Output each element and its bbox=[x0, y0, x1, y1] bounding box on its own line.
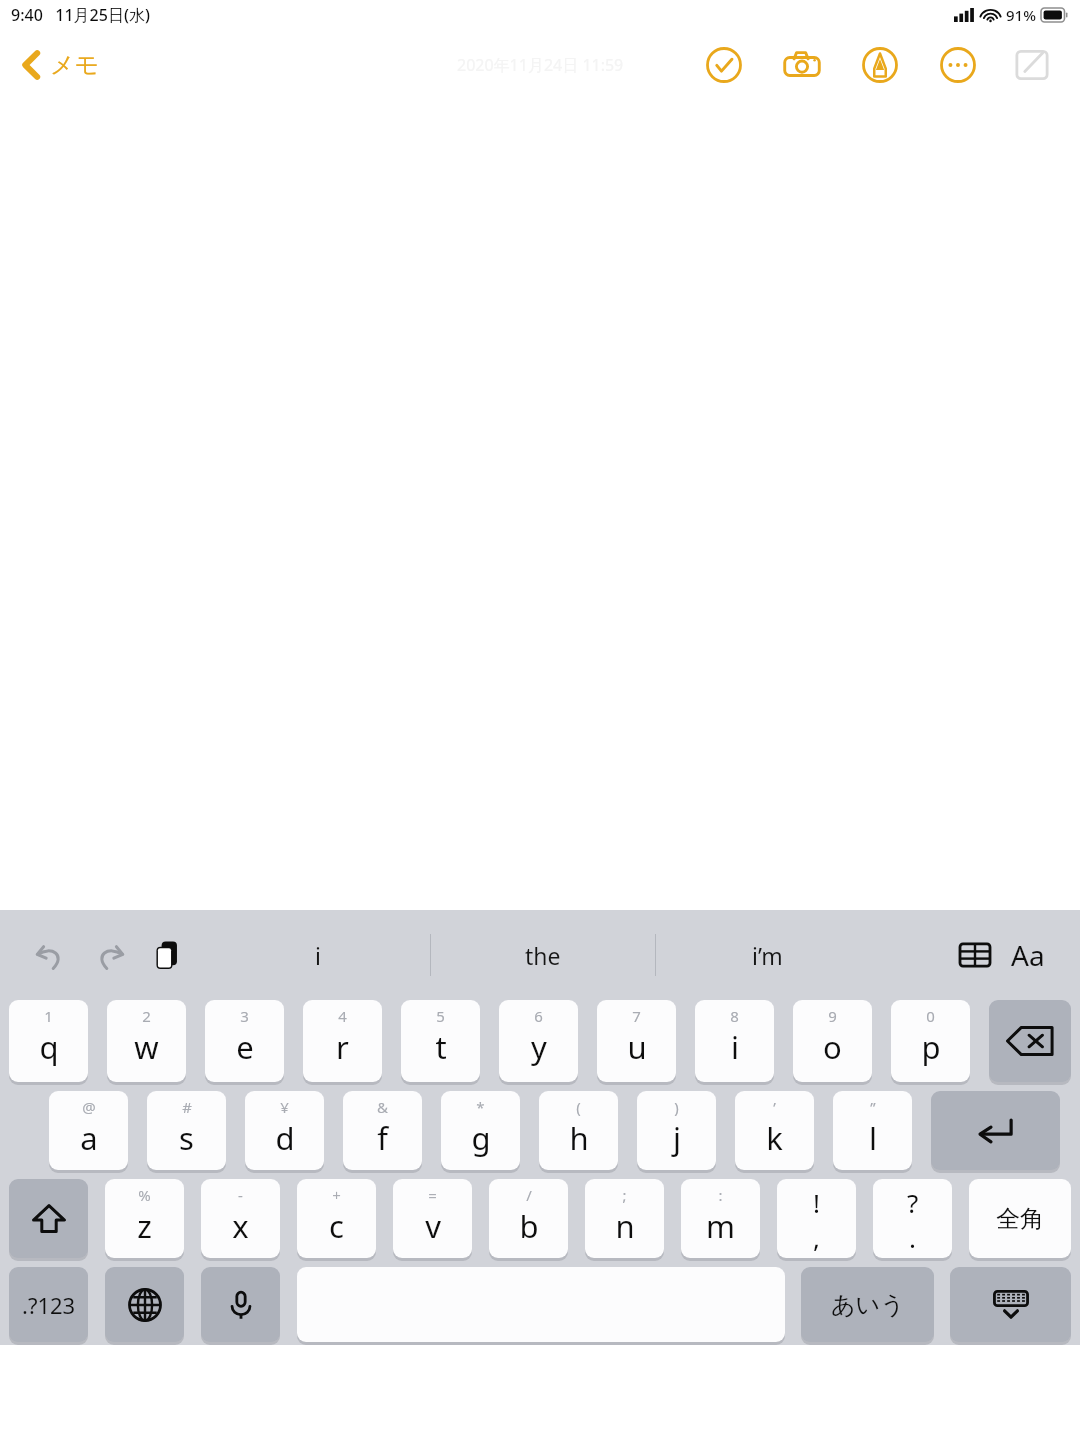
staticText: 8 bbox=[730, 1006, 739, 1026]
button[interactable]: Camera bbox=[780, 43, 824, 87]
button[interactable]: = bbox=[393, 1179, 472, 1261]
staticText: t bbox=[435, 1026, 447, 1068]
staticText: p bbox=[921, 1026, 941, 1068]
button[interactable]: ¥ bbox=[245, 1091, 324, 1173]
button[interactable]: 6 bbox=[499, 1000, 578, 1085]
staticText: + bbox=[332, 1185, 341, 1205]
staticText: 7 bbox=[632, 1006, 641, 1026]
button[interactable]: Space bbox=[297, 1267, 785, 1345]
button[interactable]: % bbox=[105, 1179, 184, 1261]
staticText: g bbox=[471, 1117, 491, 1159]
button[interactable]: ” bbox=[833, 1091, 912, 1173]
button[interactable]: ? bbox=[873, 1179, 952, 1261]
button[interactable]: Markup bbox=[858, 43, 902, 87]
staticText: c bbox=[329, 1205, 344, 1247]
staticText: / bbox=[526, 1185, 532, 1205]
button[interactable]: Table bbox=[952, 932, 998, 978]
staticText: d bbox=[275, 1117, 295, 1159]
button[interactable]: 9 bbox=[793, 1000, 872, 1085]
button[interactable]: ; bbox=[585, 1179, 664, 1261]
button[interactable]: Aa bbox=[1006, 931, 1050, 979]
button[interactable]: - bbox=[201, 1179, 280, 1261]
button[interactable]: Checklist bbox=[702, 43, 746, 87]
button[interactable]: + bbox=[297, 1179, 376, 1261]
staticText: ; bbox=[622, 1185, 627, 1205]
staticText: n bbox=[615, 1205, 635, 1247]
staticText: 0 bbox=[926, 1006, 935, 1026]
button[interactable]: ’ bbox=[735, 1091, 814, 1173]
staticText: r bbox=[336, 1026, 349, 1068]
button[interactable]: Return bbox=[931, 1091, 1060, 1173]
button[interactable]: あいう bbox=[801, 1267, 934, 1345]
button[interactable]: 全角 bbox=[969, 1179, 1071, 1261]
button[interactable]: 2 bbox=[107, 1000, 186, 1085]
button[interactable]: : bbox=[681, 1179, 760, 1261]
button[interactable]: 8 bbox=[695, 1000, 774, 1085]
staticText: 9:40 11月25日(水) bbox=[11, 4, 150, 26]
staticText: h bbox=[569, 1117, 589, 1159]
staticText: w bbox=[134, 1026, 159, 1068]
button[interactable]: メモ bbox=[16, 41, 106, 89]
staticText: @ bbox=[82, 1097, 96, 1117]
staticText: s bbox=[179, 1117, 194, 1159]
button[interactable]: Paste bbox=[144, 931, 192, 979]
button[interactable]: 4 bbox=[303, 1000, 382, 1085]
staticText: k bbox=[766, 1117, 783, 1159]
staticText: i bbox=[731, 1026, 739, 1068]
staticText: i bbox=[315, 940, 321, 971]
button[interactable]: Dictate bbox=[201, 1267, 280, 1345]
button[interactable]: @ bbox=[49, 1091, 128, 1173]
staticText: i’m bbox=[752, 940, 783, 971]
staticText: o bbox=[823, 1026, 842, 1068]
button[interactable]: More bbox=[936, 43, 980, 87]
staticText: 6 bbox=[534, 1006, 543, 1026]
staticText: 1 bbox=[44, 1006, 53, 1026]
button[interactable]: Next keyboard bbox=[105, 1267, 184, 1345]
staticText: m bbox=[706, 1205, 735, 1247]
button[interactable]: 1 bbox=[9, 1000, 88, 1085]
button[interactable]: ) bbox=[637, 1091, 716, 1173]
button[interactable]: 7 bbox=[597, 1000, 676, 1085]
button[interactable]: ( bbox=[539, 1091, 618, 1173]
staticText: z bbox=[137, 1205, 152, 1247]
button[interactable]: New note bbox=[1010, 43, 1054, 87]
staticText: : bbox=[718, 1185, 723, 1205]
staticText: 4 bbox=[338, 1006, 347, 1026]
button[interactable]: / bbox=[489, 1179, 568, 1261]
button[interactable]: Shift bbox=[9, 1179, 88, 1261]
staticText: 3 bbox=[240, 1006, 249, 1026]
staticText: v bbox=[425, 1205, 441, 1247]
button[interactable]: the bbox=[430, 910, 655, 1000]
staticText: 全角 bbox=[996, 1204, 1044, 1234]
staticText: 91% bbox=[1006, 5, 1036, 25]
staticText: ( bbox=[576, 1097, 581, 1117]
button[interactable]: i bbox=[205, 910, 430, 1000]
staticText: ¥ bbox=[280, 1097, 289, 1117]
staticText: q bbox=[39, 1026, 59, 1068]
button[interactable]: Backspace bbox=[989, 1000, 1071, 1085]
button[interactable]: Undo bbox=[26, 931, 74, 979]
staticText: e bbox=[236, 1026, 254, 1068]
button[interactable]: # bbox=[147, 1091, 226, 1173]
staticText: % bbox=[138, 1185, 151, 1205]
staticText: y bbox=[531, 1026, 547, 1068]
button[interactable]: * bbox=[441, 1091, 520, 1173]
staticText: the bbox=[525, 940, 561, 971]
staticText: ! bbox=[813, 1185, 820, 1220]
button[interactable]: 5 bbox=[401, 1000, 480, 1085]
staticText: Aa bbox=[1011, 936, 1045, 974]
button[interactable]: ! bbox=[777, 1179, 856, 1261]
staticText: ’ bbox=[773, 1097, 776, 1117]
button[interactable]: 0 bbox=[891, 1000, 970, 1085]
staticText: # bbox=[182, 1097, 192, 1117]
button[interactable]: Redo bbox=[86, 931, 134, 979]
button[interactable]: & bbox=[343, 1091, 422, 1173]
button[interactable]: i’m bbox=[655, 910, 880, 1000]
staticText: ? bbox=[907, 1185, 919, 1220]
staticText: ) bbox=[674, 1097, 679, 1117]
button[interactable]: 3 bbox=[205, 1000, 284, 1085]
button[interactable]: Hide keyboard bbox=[950, 1267, 1071, 1345]
button[interactable]: .?123 bbox=[9, 1267, 88, 1345]
staticText: 9 bbox=[828, 1006, 837, 1026]
staticText: 2 bbox=[142, 1006, 151, 1026]
